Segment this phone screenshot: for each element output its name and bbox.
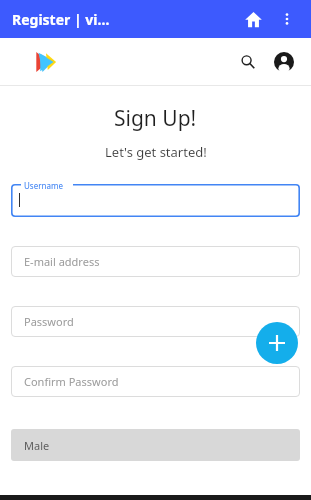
staticText: Sign Up!: [114, 104, 197, 133]
button[interactable]: E-mail address: [11, 246, 300, 277]
button[interactable]: Male: [11, 429, 300, 461]
button[interactable]: Confirm Password: [11, 366, 300, 397]
button[interactable]: Home: [239, 5, 267, 33]
button[interactable]: Add: [256, 322, 298, 364]
staticText: Register | vi…: [12, 10, 239, 29]
button[interactable]: Google Play: [33, 49, 59, 75]
button[interactable]: Username: [11, 184, 300, 217]
button[interactable]: Password: [11, 306, 300, 337]
staticText: Password: [24, 314, 74, 329]
staticText: E-mail address: [24, 254, 100, 269]
staticText: Username: [24, 180, 63, 191]
staticText: Let's get started!: [105, 143, 207, 161]
staticText: Male: [24, 438, 50, 453]
staticText: Confirm Password: [24, 374, 119, 389]
button[interactable]: Search: [235, 49, 261, 75]
button[interactable]: More options: [275, 7, 299, 31]
button[interactable]: Account: [271, 49, 297, 75]
